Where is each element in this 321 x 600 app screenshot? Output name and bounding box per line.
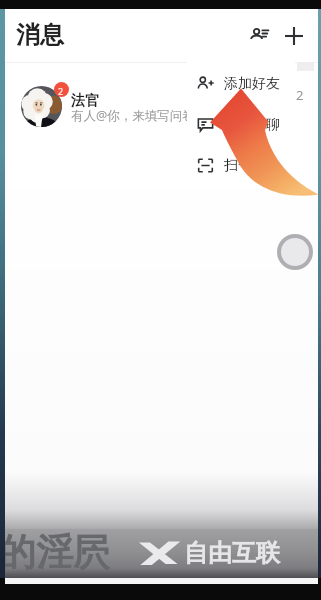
button[interactable]: 发起群聊 xyxy=(187,104,295,145)
button[interactable]: Add xyxy=(277,19,311,53)
staticText: 发起群聊 xyxy=(224,116,280,134)
staticText: 扫一扫 xyxy=(224,157,266,175)
button[interactable]: 扫一扫 xyxy=(187,145,295,186)
staticText: 2 xyxy=(296,86,304,104)
staticText: 2 xyxy=(58,85,64,97)
button[interactable]: 2 xyxy=(5,63,318,149)
staticText: 自由互联 xyxy=(184,538,280,568)
staticText: 添加好友 xyxy=(224,75,280,93)
button[interactable]: 添加好友 xyxy=(187,63,295,104)
button[interactable]: Assistive touch xyxy=(277,234,313,270)
staticText: 法官 xyxy=(71,92,99,110)
staticText: 的淫屄 xyxy=(0,529,110,576)
staticText: 有人@你，来填写问卷吧 xyxy=(71,107,208,124)
button[interactable]: Contacts xyxy=(243,19,277,53)
staticText: 消息 xyxy=(16,20,64,50)
